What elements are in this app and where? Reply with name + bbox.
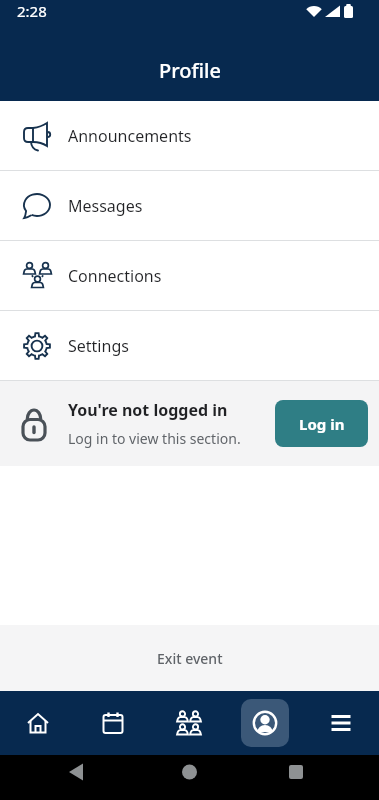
- staticText: Exit event: [157, 649, 223, 668]
- staticText: You're not logged in: [68, 399, 228, 421]
- staticText: Log in: [299, 414, 345, 434]
- button[interactable]: Exit event: [0, 625, 379, 691]
- staticText: Profile: [159, 57, 221, 84]
- button[interactable]: Settings: [0, 311, 379, 381]
- button[interactable]: [303, 691, 379, 755]
- staticText: 2:28: [17, 1, 47, 21]
- button[interactable]: [75, 691, 151, 755]
- staticText: Settings: [68, 335, 129, 357]
- staticText: Messages: [68, 195, 143, 217]
- button[interactable]: Messages: [0, 171, 379, 241]
- button[interactable]: Log in: [275, 400, 368, 447]
- button[interactable]: [227, 691, 303, 755]
- button[interactable]: [151, 691, 227, 755]
- staticText: Connections: [68, 265, 162, 287]
- button[interactable]: [0, 691, 75, 755]
- staticText: Announcements: [68, 125, 192, 147]
- button[interactable]: Connections: [0, 241, 379, 311]
- button[interactable]: Announcements: [0, 101, 379, 171]
- staticText: Log in to view this section.: [68, 429, 241, 448]
